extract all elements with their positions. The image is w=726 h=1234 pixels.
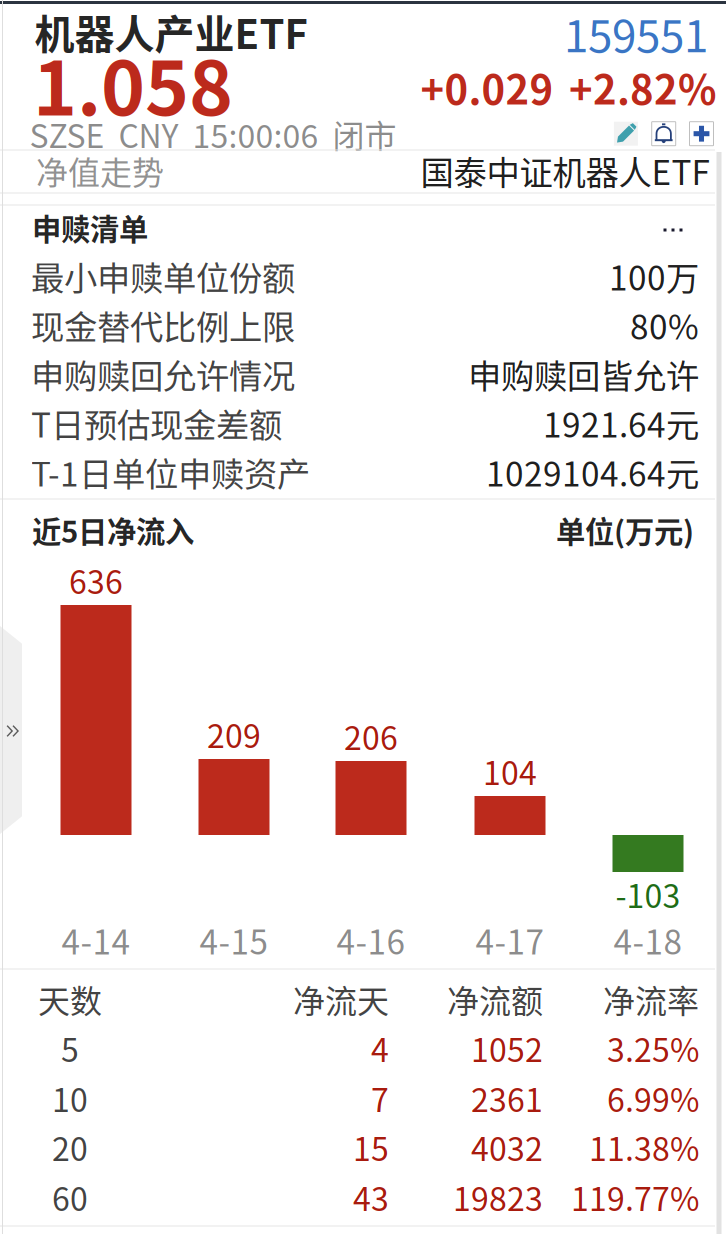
staticText: T-1日单位申赎资产 <box>31 448 310 496</box>
staticText: 104 <box>483 748 537 794</box>
staticText: +0.029 <box>420 58 553 116</box>
staticText: 6.99% <box>607 1075 699 1121</box>
staticText: 7 <box>371 1075 389 1121</box>
staticText: 11.38% <box>589 1124 699 1170</box>
button[interactable]: Expand panel <box>0 626 22 834</box>
staticText: 机器人产业ETF <box>34 2 307 60</box>
staticText: 净流率 <box>603 976 699 1022</box>
staticText: 4-15 <box>199 916 268 964</box>
staticText: 4-14 <box>61 916 130 964</box>
staticText: 1.058 <box>33 29 233 137</box>
staticText: 5 <box>61 1025 79 1071</box>
button[interactable]: Add <box>689 122 713 146</box>
staticText: 国泰中证机器人ETF <box>420 146 709 195</box>
staticText: 4-16 <box>336 916 405 964</box>
staticText: 天数 <box>38 976 102 1022</box>
staticText: 净流额 <box>447 976 543 1022</box>
staticText: 申购赎回皆允许 <box>468 350 699 398</box>
button[interactable]: Edit <box>614 122 638 146</box>
staticText: 4032 <box>471 1124 543 1170</box>
staticText: 2361 <box>471 1075 543 1121</box>
staticText: 现金替代比例上限 <box>31 301 295 349</box>
staticText: 10 <box>52 1075 88 1121</box>
staticText: T日预估现金差额 <box>31 399 282 447</box>
staticText: 43 <box>353 1174 389 1220</box>
staticText: 20 <box>52 1124 88 1170</box>
staticText: 15 <box>353 1124 389 1170</box>
staticText: 近5日净流入 <box>32 509 194 551</box>
staticText: 最小申赎单位份额 <box>31 252 295 300</box>
staticText: 206 <box>344 713 398 759</box>
staticText: 4-17 <box>475 916 544 964</box>
staticText: -103 <box>615 871 680 917</box>
button[interactable]: More <box>650 210 696 250</box>
staticText: SZSE CNY 15:00:06 闭市 <box>29 111 396 157</box>
staticText: 申赎清单 <box>32 206 148 249</box>
staticText: 申购赎回允许情况 <box>31 350 295 398</box>
staticText: 4-18 <box>613 916 682 964</box>
staticText: 4 <box>371 1025 389 1071</box>
staticText: 1052 <box>471 1025 543 1071</box>
staticText: 净值走势 <box>36 147 164 194</box>
staticText: 159551 <box>564 1 708 65</box>
staticText: 净流天 <box>293 976 389 1022</box>
staticText: +2.82% <box>569 58 717 116</box>
button[interactable]: Alerts <box>652 122 676 146</box>
staticText: 1029104.64元 <box>486 448 699 496</box>
staticText: 19823 <box>453 1174 543 1220</box>
staticText: 60 <box>52 1174 88 1220</box>
staticText: 636 <box>69 557 123 603</box>
staticText: 80% <box>630 301 699 349</box>
staticText: 209 <box>207 711 261 757</box>
staticText: 3.25% <box>607 1025 699 1071</box>
staticText: 单位(万元) <box>556 509 694 551</box>
staticText: 1921.64元 <box>543 399 699 447</box>
staticText: 119.77% <box>571 1174 699 1220</box>
staticText: 100万 <box>609 252 699 300</box>
